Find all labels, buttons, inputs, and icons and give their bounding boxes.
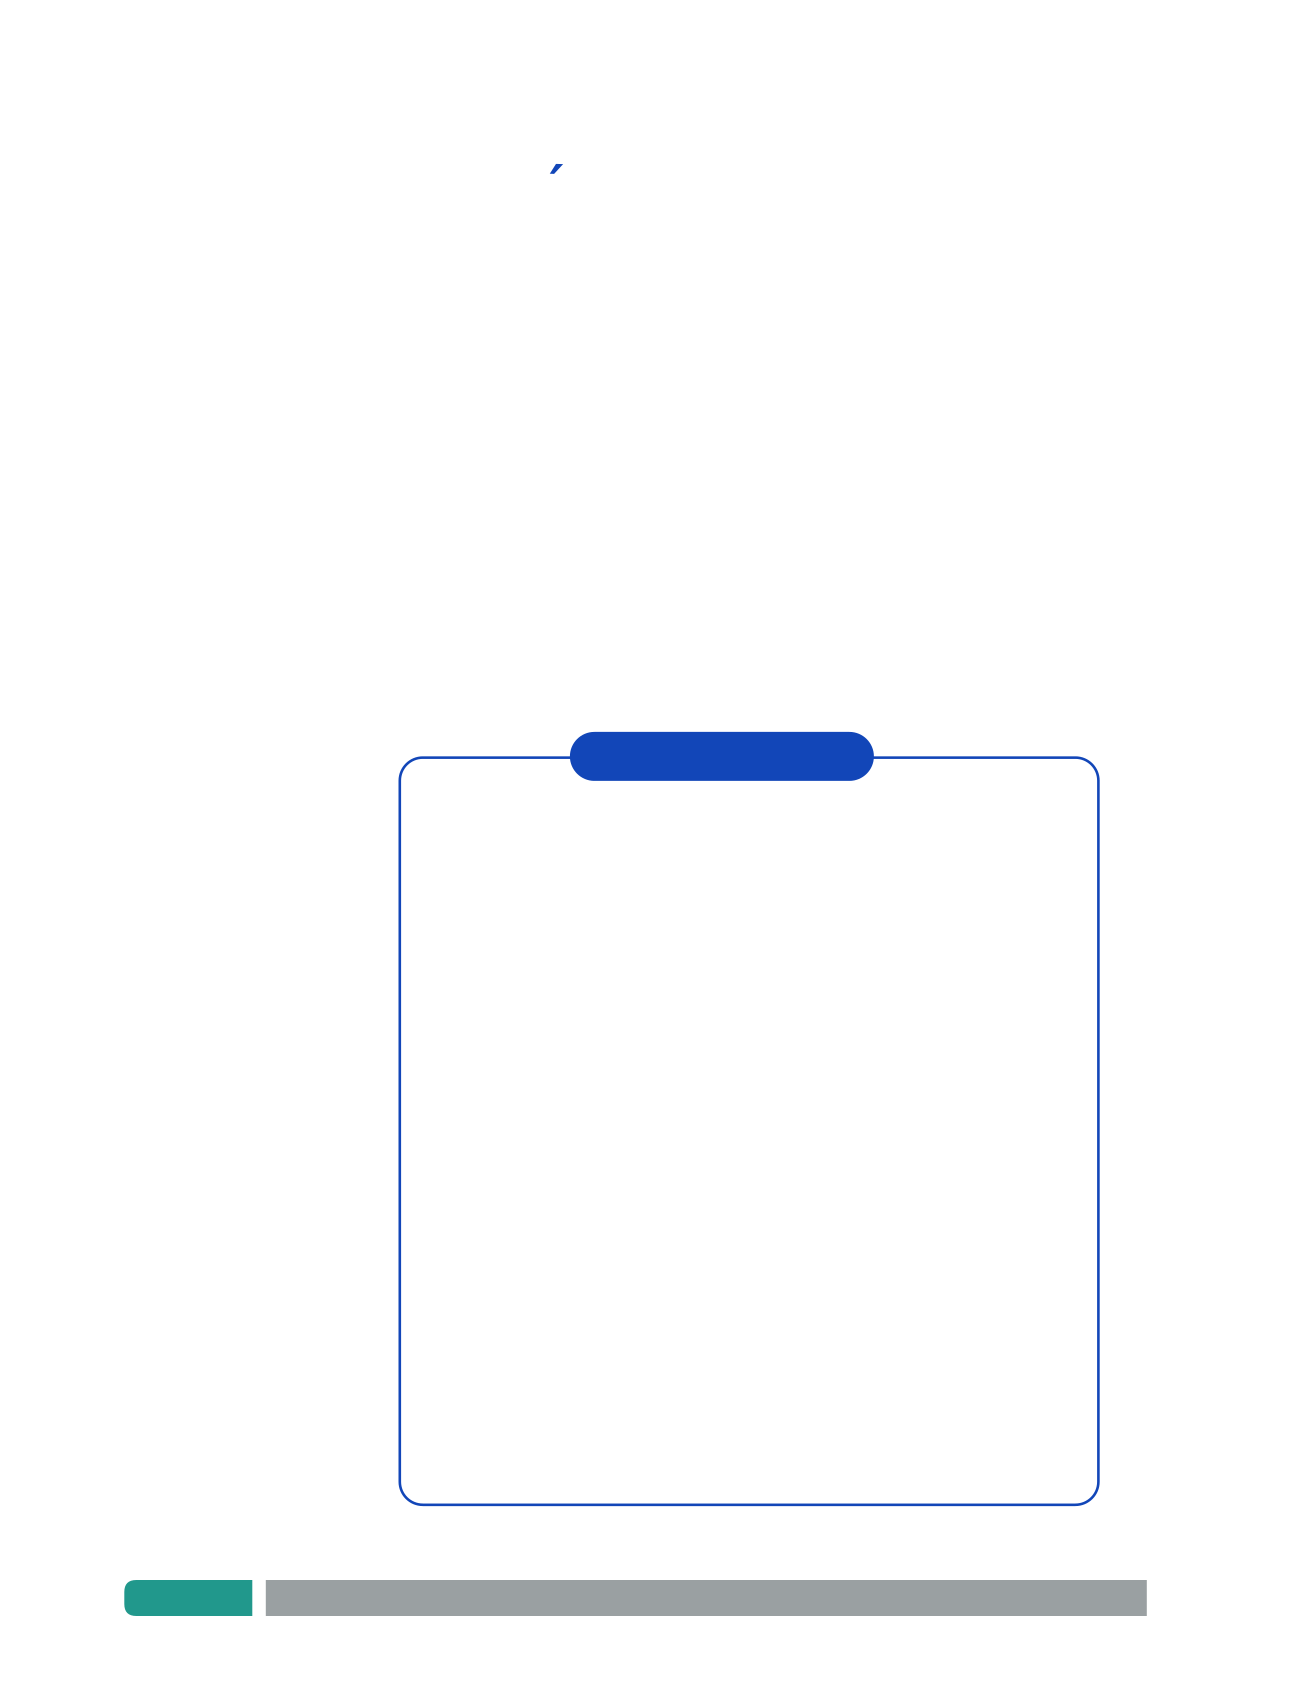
button[interactable]: Section — [570, 732, 874, 781]
